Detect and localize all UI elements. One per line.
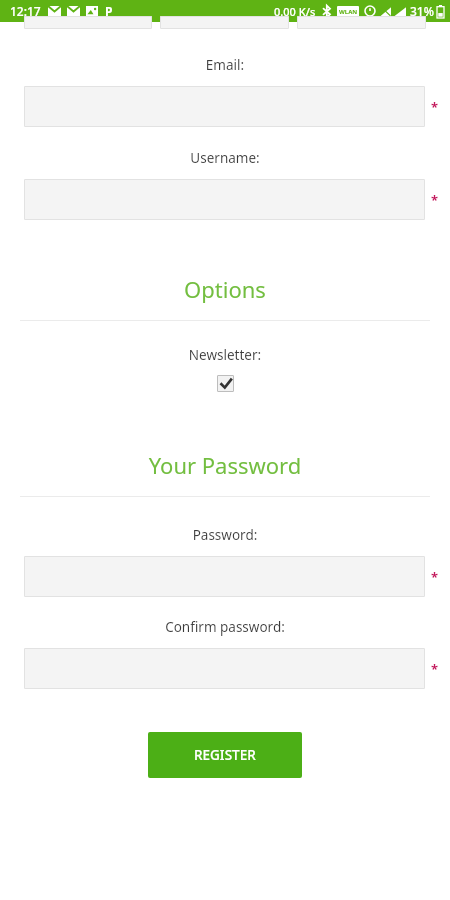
button[interactable]: REGISTER xyxy=(148,732,302,778)
staticText: WLAN xyxy=(339,8,358,16)
staticText: Options xyxy=(0,274,450,304)
button[interactable]: Username xyxy=(24,179,425,220)
staticText: Newsletter: xyxy=(0,346,450,364)
staticText: 31% xyxy=(410,3,434,19)
button[interactable]: Name field xyxy=(297,16,426,29)
button[interactable]: Name field xyxy=(160,16,289,29)
button[interactable]: Confirm password xyxy=(24,648,425,689)
staticText: 12:17 xyxy=(10,3,41,19)
staticText: REGISTER xyxy=(194,746,256,764)
staticText: * xyxy=(431,660,439,678)
staticText: Your Password xyxy=(0,450,450,480)
staticText: Confirm password: xyxy=(0,618,450,636)
button[interactable]: Password xyxy=(24,556,425,597)
staticText: * xyxy=(431,568,439,586)
button[interactable]: Email xyxy=(24,86,425,127)
button[interactable]: Newsletter checkbox, checked xyxy=(217,375,234,392)
staticText: 0.00 K/s xyxy=(274,4,316,19)
staticText: Email: xyxy=(0,56,450,74)
staticText: Username: xyxy=(0,149,450,167)
staticText: Password: xyxy=(0,526,450,544)
button[interactable]: Name field xyxy=(24,16,152,29)
staticText: * xyxy=(431,98,439,116)
staticText: P xyxy=(105,3,113,19)
staticText: * xyxy=(431,191,439,209)
